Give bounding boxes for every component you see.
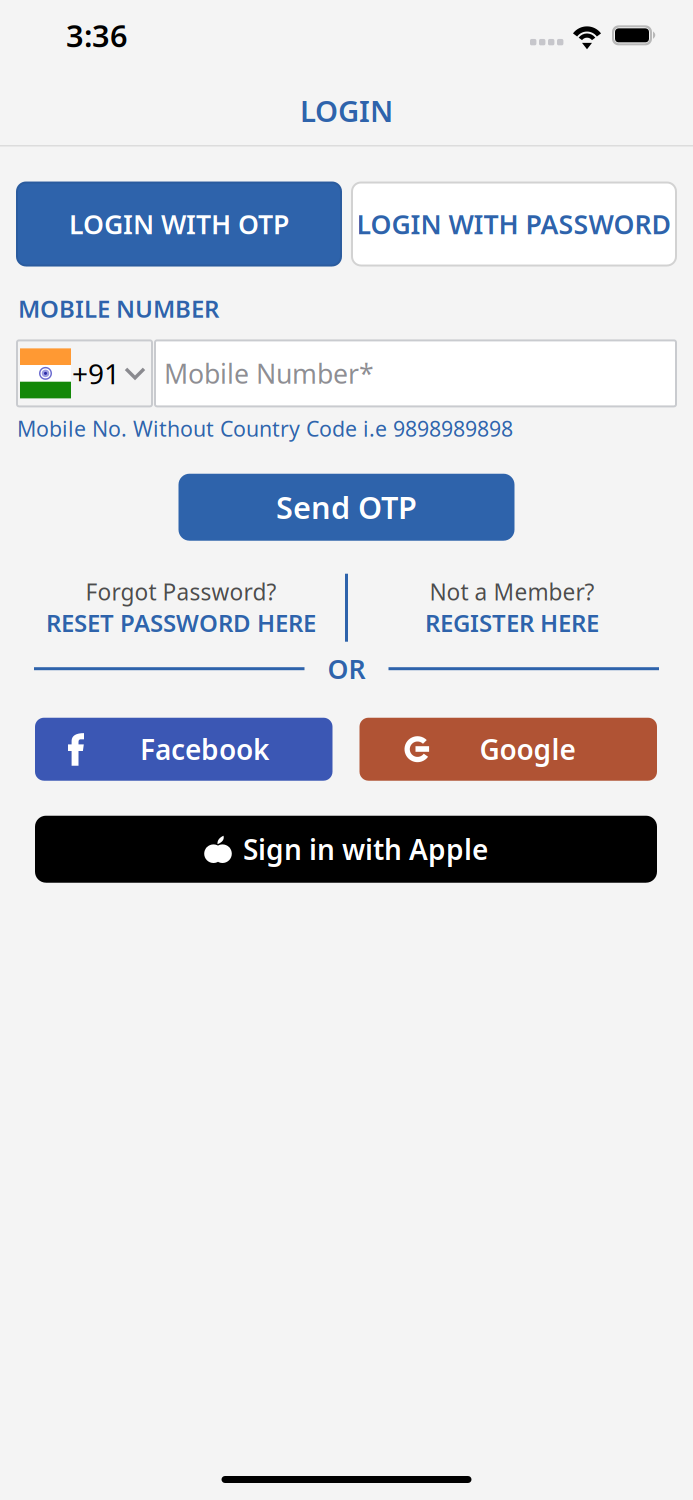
staticText: OR: [327, 651, 365, 686]
button[interactable]: LOGIN WITH OTP: [17, 182, 341, 265]
button[interactable]: Sign in with Apple: [35, 816, 657, 883]
button[interactable]: LOGIN: [0, 76, 693, 145]
button[interactable]: LOGIN WITH PASSWORD: [352, 182, 676, 265]
staticText: Send OTP: [276, 487, 417, 527]
staticText: RESET PASSWORD HERE: [46, 607, 316, 639]
staticText: 3:36: [66, 15, 128, 56]
button[interactable]: Not a Member?: [348, 574, 676, 642]
staticText: REGISTER HERE: [425, 607, 599, 639]
staticText: LOGIN WITH PASSWORD: [356, 206, 671, 242]
button[interactable]: Facebook: [35, 718, 332, 781]
staticText: Facebook: [140, 731, 269, 768]
staticText: LOGIN WITH OTP: [69, 206, 289, 242]
button[interactable]: Send OTP: [178, 474, 514, 541]
staticText: Sign in with Apple: [243, 831, 488, 868]
staticText: Not a Member?: [429, 577, 594, 607]
button[interactable]: Google: [359, 718, 657, 781]
staticText: LOGIN: [300, 91, 393, 130]
staticText: Google: [479, 731, 575, 768]
staticText: MOBILE NUMBER: [18, 292, 219, 324]
staticText: Forgot Password?: [85, 577, 276, 607]
button[interactable]: +91: [17, 340, 152, 406]
staticText: Mobile No. Without Country Code i.e 9898…: [17, 414, 513, 443]
button[interactable]: Forgot Password?: [17, 574, 345, 642]
staticText: Mobile Number*: [164, 356, 374, 391]
staticText: +91: [72, 355, 120, 392]
